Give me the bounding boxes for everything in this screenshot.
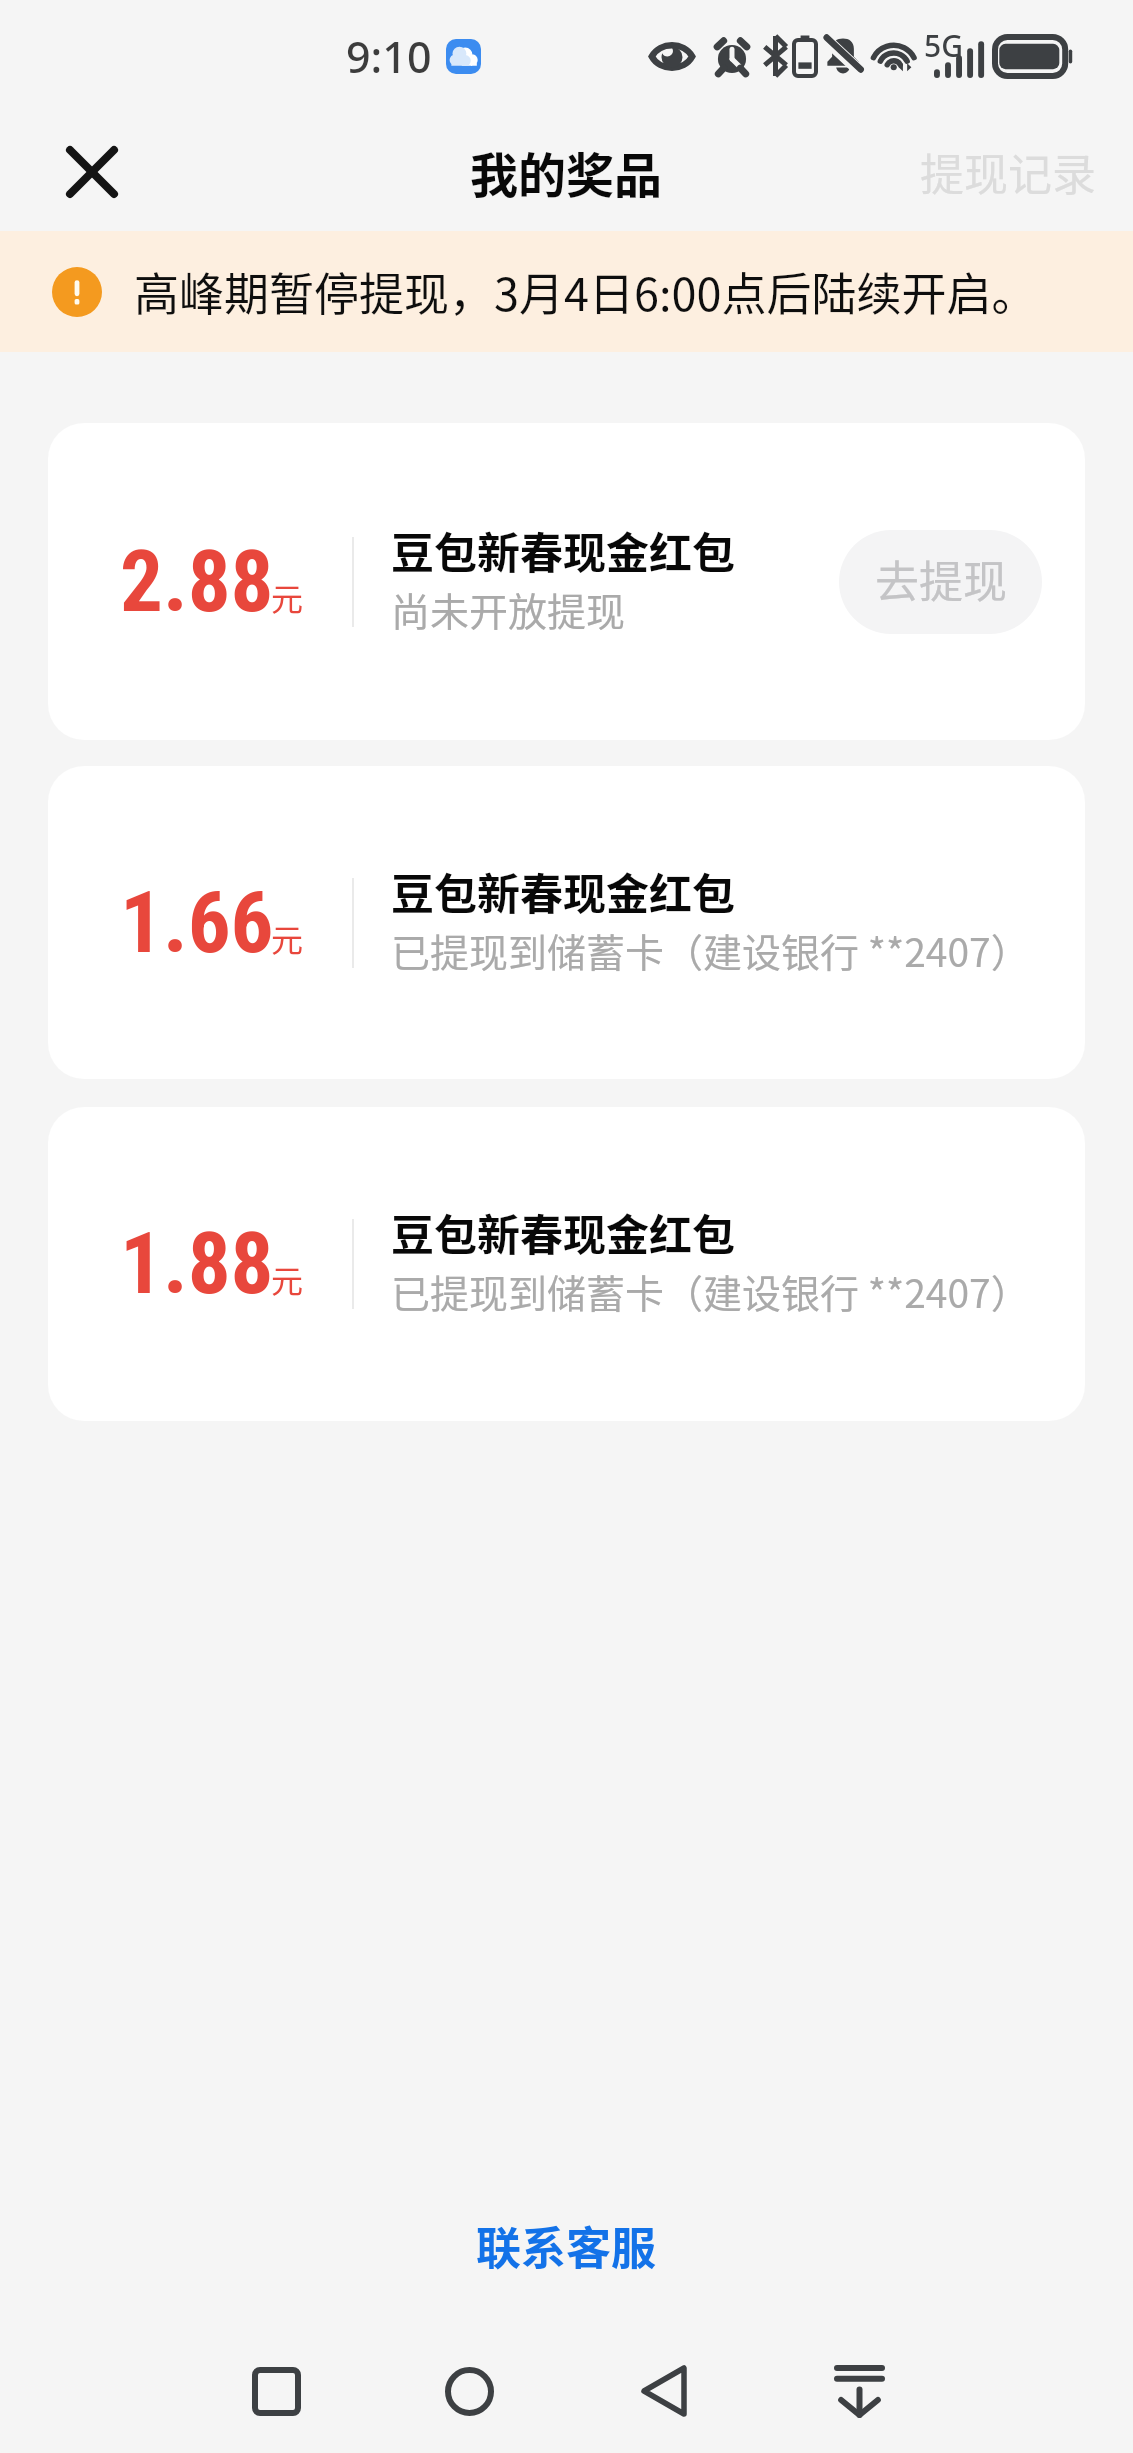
button[interactable]: 去提现 — [839, 530, 1042, 634]
button[interactable]: 提现记录 — [900, 126, 1133, 218]
staticText: 5G — [924, 25, 963, 66]
other: Alarm — [713, 37, 751, 75]
staticText: 已提现到储蓄卡（建设银行 **2407） — [391, 922, 1030, 978]
staticText: 9:10 — [346, 27, 432, 86]
staticText: 2.88 — [120, 532, 274, 632]
button[interactable]: 2.88 — [48, 423, 1085, 740]
button[interactable]: Hide keyboard — [804, 2336, 914, 2446]
button[interactable]: 1.66 — [48, 766, 1085, 1079]
staticText: 提现记录 — [920, 140, 1096, 204]
button[interactable]: 联系客服 — [430, 2197, 703, 2294]
other: Battery — [995, 37, 1073, 76]
other: Bluetooth — [762, 36, 789, 76]
other: Eye protection — [649, 39, 695, 74]
button[interactable]: Recent apps — [221, 2336, 331, 2446]
other: Silent — [826, 35, 860, 77]
staticText: 1.66 — [120, 873, 274, 973]
staticText: 尚未开放提现 — [391, 581, 626, 637]
button[interactable]: 1.88 — [48, 1107, 1085, 1421]
staticText: 元 — [271, 1256, 304, 1302]
staticText: 元 — [271, 915, 304, 961]
staticText: 1.88 — [120, 1214, 274, 1314]
other: Wi-Fi — [874, 36, 921, 76]
staticText: 去提现 — [875, 547, 1007, 611]
staticText: 已提现到储蓄卡（建设银行 **2407） — [391, 1263, 1030, 1319]
button[interactable]: Home — [414, 2336, 524, 2446]
staticText: 元 — [271, 574, 304, 620]
button[interactable]: Back — [609, 2336, 719, 2446]
staticText: 豆包新春现金红包 — [391, 1201, 735, 1263]
other: Signal 5G — [926, 34, 984, 78]
staticText: 豆包新春现金红包 — [391, 519, 735, 581]
staticText: 高峰期暂停提现，3月4日6:00点后陆续开启。 — [134, 259, 1037, 324]
button[interactable]: Close — [48, 128, 136, 216]
staticText: 我的奖品 — [470, 137, 663, 207]
staticText: 联系客服 — [476, 2213, 657, 2278]
staticText: 豆包新春现金红包 — [391, 860, 735, 922]
